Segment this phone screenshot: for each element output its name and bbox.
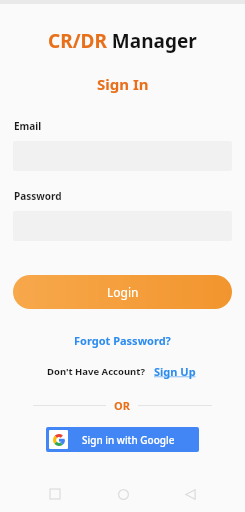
button[interactable]: Recent apps bbox=[42, 481, 68, 507]
staticText: OR bbox=[114, 398, 130, 413]
staticText: Sign Up bbox=[154, 364, 196, 379]
button[interactable]: Home bbox=[110, 481, 136, 507]
staticText: CR/DR Manager bbox=[48, 28, 197, 54]
button[interactable]: Back bbox=[177, 481, 203, 507]
staticText: Password bbox=[14, 189, 62, 203]
button[interactable]: Login bbox=[13, 275, 232, 309]
staticText: Forgot Password? bbox=[74, 333, 171, 348]
staticText: Sign in with Google bbox=[82, 433, 175, 447]
staticText: Login bbox=[107, 284, 139, 300]
button[interactable]: Sign Up bbox=[151, 362, 199, 381]
staticText: Sign In bbox=[97, 74, 149, 94]
staticText: Don't Have Account? bbox=[47, 365, 145, 378]
staticText: Email bbox=[14, 119, 42, 133]
button[interactable]: Sign in with Google bbox=[46, 427, 199, 452]
button[interactable]: Forgot Password? bbox=[68, 330, 177, 351]
